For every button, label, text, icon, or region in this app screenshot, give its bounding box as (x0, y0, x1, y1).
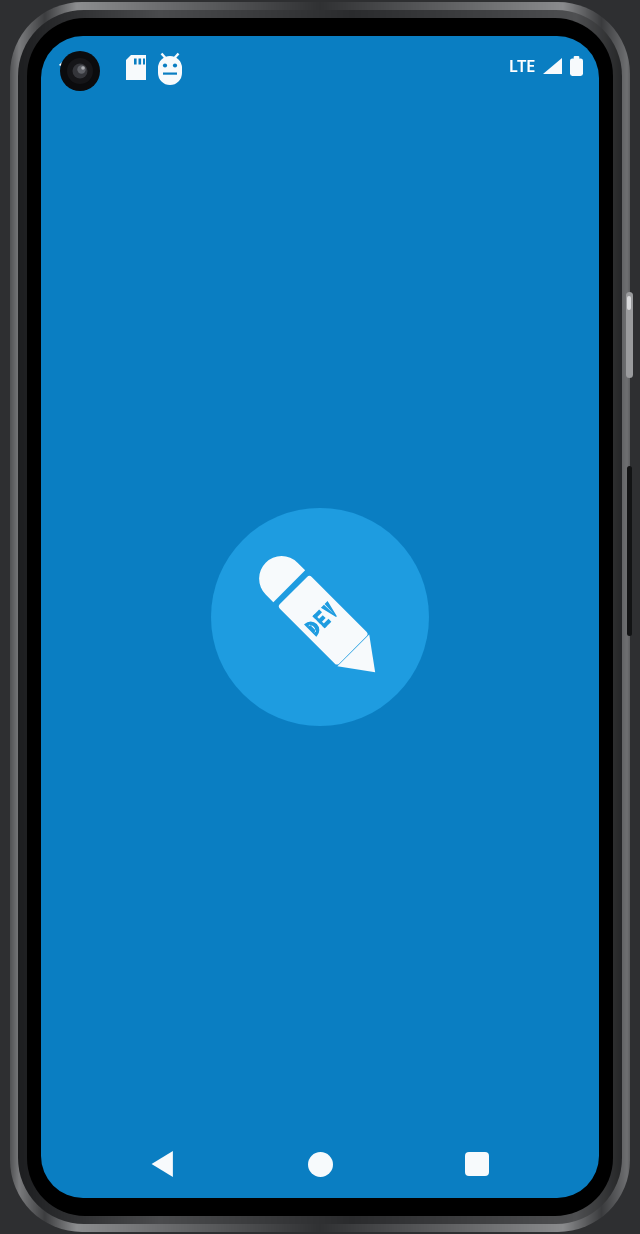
button[interactable]: Recent apps (442, 1134, 512, 1194)
other: DEV app logo (211, 508, 429, 726)
staticText: 1:38 (58, 56, 92, 79)
button[interactable]: Back (128, 1134, 198, 1194)
button[interactable]: Home (285, 1134, 355, 1194)
staticText: LTE (509, 55, 536, 77)
